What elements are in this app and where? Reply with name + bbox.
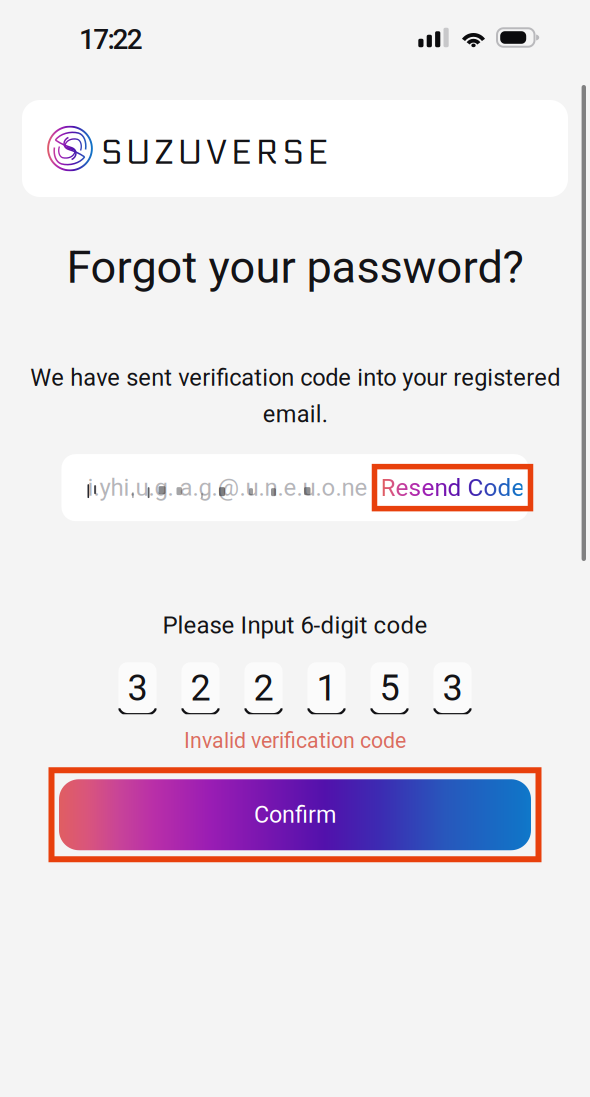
staticText: Forgot your password? (66, 241, 523, 294)
button[interactable]: Confirm (51, 770, 538, 859)
staticText: We have sent verification code into your… (30, 364, 560, 428)
staticText: Please Input 6-digit code (162, 611, 427, 639)
staticText: Confirm (254, 801, 336, 828)
staticText: 5 (379, 667, 399, 709)
staticText: i.yhi.u.g. a.g.@.u.n.e.u.o.ne (87, 474, 367, 502)
staticText: Invalid verification code (184, 728, 406, 753)
staticText: 3 (442, 667, 462, 709)
staticText: 2 (190, 667, 210, 709)
staticText: 2 (253, 667, 273, 709)
staticText: 1 (316, 667, 336, 709)
staticText: 17:22 (79, 23, 143, 56)
button[interactable] (374, 467, 528, 509)
staticText: SUZUVERSE (101, 133, 328, 173)
staticText: 3 (127, 667, 147, 709)
